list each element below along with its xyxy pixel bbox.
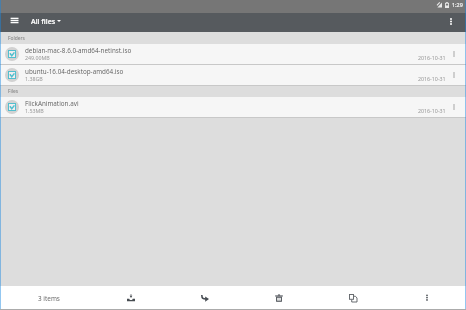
- staticText: Files: [8, 88, 19, 95]
- staticText: 1:29: [452, 1, 463, 8]
- staticText: 2016-10-31: [418, 107, 446, 114]
- button[interactable]: 3 items: [0, 286, 93, 310]
- staticText: 3 items: [38, 294, 60, 303]
- staticText: All files: [31, 16, 56, 26]
- staticText: 1.38GB: [25, 75, 43, 82]
- button[interactable]: More options: [448, 49, 459, 60]
- staticText: debian-mac-8.6.0-amd64-netinst.iso: [25, 46, 132, 55]
- button[interactable]: debian-mac-8.6.0-amd64-netinst.iso: [0, 44, 466, 64]
- button[interactable]: All files: [31, 11, 61, 30]
- button[interactable]: More options: [390, 286, 464, 310]
- button[interactable]: More options: [448, 70, 459, 81]
- button[interactable]: Navigation menu: [0, 13, 19, 32]
- button[interactable]: Save to device: [93, 286, 168, 310]
- staticText: 249.00MB: [25, 54, 50, 61]
- staticText: 1.53MB: [25, 107, 44, 114]
- button[interactable]: Move: [168, 286, 242, 310]
- staticText: FlickAnimation.avi: [25, 99, 79, 108]
- staticText: Folders: [8, 35, 25, 42]
- staticText: ubuntu-16.04-desktop-amd64.iso: [25, 67, 124, 76]
- staticText: 2016-10-31: [418, 75, 446, 82]
- button[interactable]: More options: [448, 102, 459, 113]
- button[interactable]: More options: [442, 12, 460, 30]
- button[interactable]: Copy: [316, 286, 390, 310]
- button[interactable]: Delete: [242, 286, 316, 310]
- button[interactable]: ubuntu-16.04-desktop-amd64.iso: [0, 65, 466, 85]
- staticText: 2016-10-31: [418, 54, 446, 61]
- button[interactable]: FlickAnimation.avi: [0, 97, 466, 117]
